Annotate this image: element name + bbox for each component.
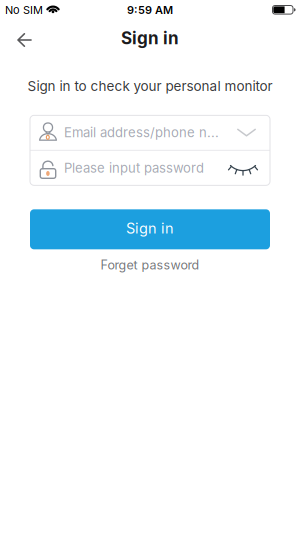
staticText: Forget password xyxy=(100,257,199,272)
staticText: Sign in xyxy=(121,28,179,48)
staticText: Sign in xyxy=(126,220,174,237)
button[interactable]: Back xyxy=(0,21,43,55)
button[interactable]: Forget password xyxy=(92,255,207,274)
staticText: Please input password xyxy=(64,160,204,176)
staticText: No SIM xyxy=(5,3,43,17)
button[interactable]: Show password xyxy=(226,153,270,183)
staticText: Email address/phone n... xyxy=(64,125,219,141)
staticText: Sign in to check your personal monitor xyxy=(27,78,272,94)
button[interactable]: Please input password xyxy=(30,151,270,185)
button[interactable]: Email address/phone number xyxy=(30,115,270,150)
staticText: 9:59 AM xyxy=(127,3,173,17)
button[interactable]: Sign in xyxy=(30,209,270,249)
